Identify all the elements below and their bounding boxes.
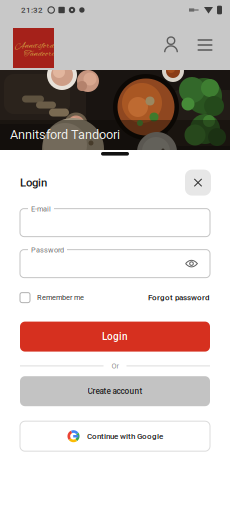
staticText: Tandoori [24, 48, 54, 60]
staticText: Login [20, 176, 47, 189]
staticText: Password [31, 246, 64, 254]
button[interactable]: Create account [20, 376, 210, 406]
staticText: 21:32 [21, 5, 43, 15]
button[interactable]: Close [185, 170, 211, 196]
staticText: Or [111, 362, 118, 370]
button[interactable]: Login [20, 322, 210, 352]
staticText: E-mail [31, 205, 51, 213]
button[interactable]: Account [157, 21, 185, 69]
button[interactable]: Continue with Google [20, 421, 210, 451]
staticText: Remember me [37, 293, 84, 302]
button[interactable]: Menu [191, 21, 219, 69]
staticText: Create account [87, 386, 142, 396]
staticText: Forgot password [148, 293, 210, 302]
staticText: Continue with Google [87, 431, 163, 441]
staticText: Annitsford [15, 40, 54, 52]
staticText: Login [102, 331, 128, 342]
staticText: Annitsford Tandoori [10, 127, 120, 142]
button[interactable]: Remember me [20, 288, 84, 308]
button[interactable]: Forgot password [148, 288, 210, 308]
